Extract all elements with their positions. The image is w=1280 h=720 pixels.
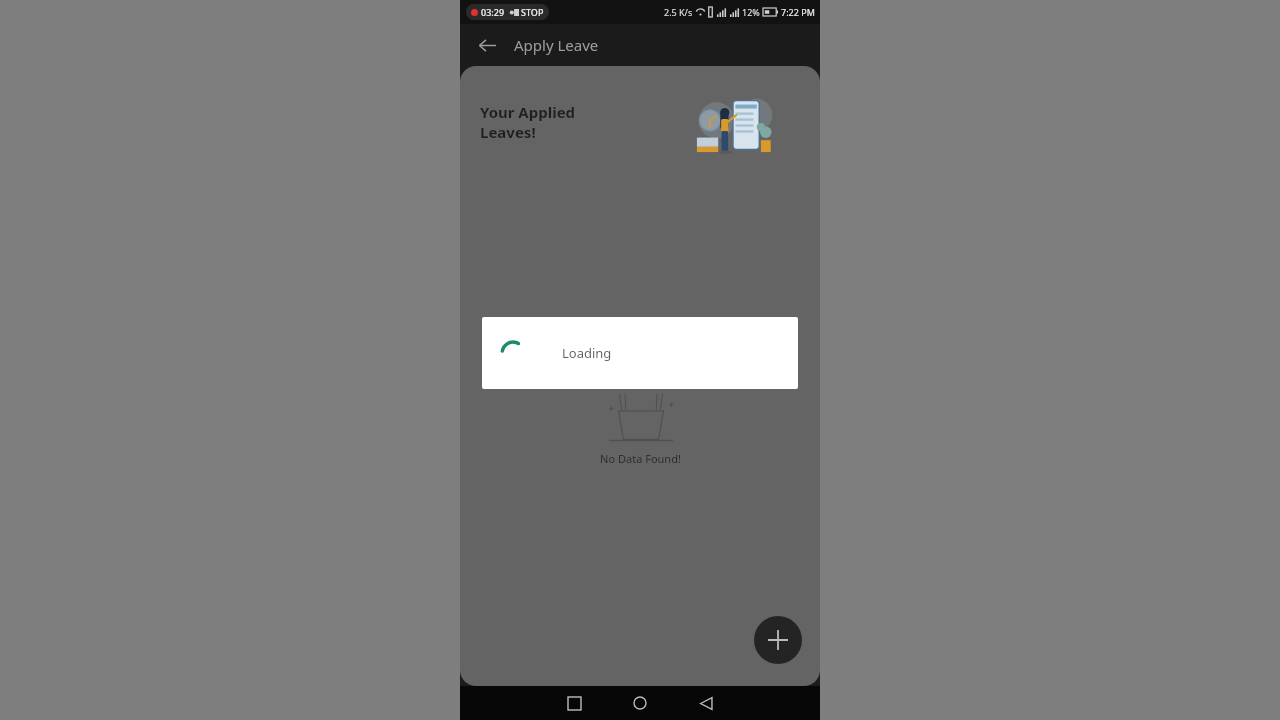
staticText: 7:22 PM	[781, 6, 815, 18]
staticText: Loading	[562, 344, 612, 362]
staticText: Your Applied Leaves!	[480, 102, 576, 142]
staticText: 03:29	[481, 6, 505, 18]
button[interactable]: Add leave	[754, 616, 802, 664]
staticText: Apply Leave	[514, 35, 599, 55]
staticText: STOP	[521, 6, 544, 18]
button[interactable]: Back	[470, 28, 504, 62]
button[interactable]: Back	[682, 686, 730, 720]
button[interactable]: Home	[616, 686, 664, 720]
button[interactable]: Recents	[550, 686, 598, 720]
staticText: 12%	[742, 6, 760, 18]
staticText: No Data Found!	[600, 451, 681, 466]
staticText: 2.5 K/s	[664, 6, 693, 18]
